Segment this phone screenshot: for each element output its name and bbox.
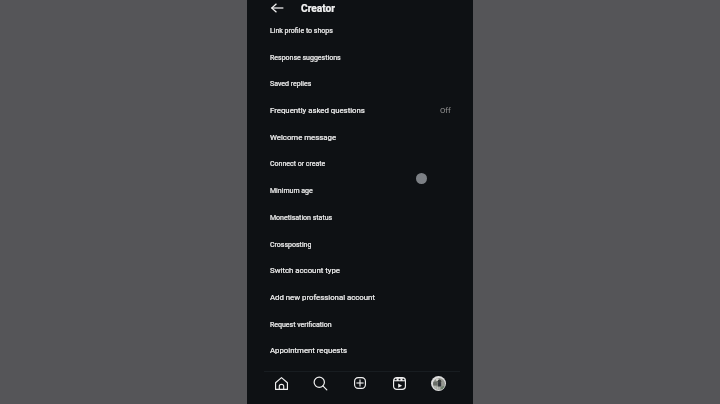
button[interactable]: Request verification <box>247 311 473 338</box>
staticText: Saved replies <box>270 80 312 88</box>
button[interactable]: Monetisation status <box>247 204 473 231</box>
button[interactable]: Link profile to shops <box>247 17 473 44</box>
staticText: Connect or create <box>270 160 326 168</box>
button[interactable]: Add new professional account <box>247 284 473 311</box>
button[interactable]: Reels <box>386 370 412 396</box>
button[interactable]: Frequently asked questions <box>247 97 473 124</box>
staticText: Frequently asked questions <box>270 106 365 115</box>
staticText: Switch account type <box>270 266 340 275</box>
button[interactable]: Saved replies <box>247 70 473 97</box>
button[interactable]: Profile <box>425 370 451 396</box>
button[interactable]: Switch account type <box>247 257 473 284</box>
staticText: Crossposting <box>270 241 312 249</box>
button[interactable]: Crossposting <box>247 231 473 258</box>
staticText: Welcome message <box>270 133 337 142</box>
button[interactable]: Connect or create <box>247 150 473 177</box>
staticText: Request verification <box>270 321 332 329</box>
staticText: Appointment requests <box>270 346 347 355</box>
staticText: Link profile to shops <box>270 27 333 35</box>
staticText: Monetisation status <box>270 214 333 222</box>
staticText: Add new professional account <box>270 293 375 302</box>
staticText: Response suggestions <box>270 54 341 62</box>
button[interactable]: Search <box>307 370 333 396</box>
button[interactable]: Back <box>265 0 289 19</box>
button[interactable]: Minimum age <box>247 177 473 204</box>
staticText: Minimum age <box>270 187 313 195</box>
staticText: Creator <box>301 3 336 15</box>
button[interactable]: Appointment requests <box>247 337 473 364</box>
button[interactable]: Response suggestions <box>247 44 473 71</box>
button[interactable]: Welcome message <box>247 124 473 151</box>
button[interactable]: Create <box>347 370 373 396</box>
button[interactable]: Home <box>268 370 294 396</box>
staticText: Off <box>440 106 451 115</box>
